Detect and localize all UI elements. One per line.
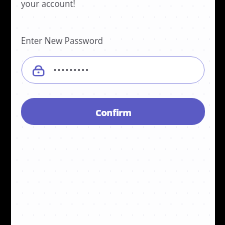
staticText: Enter New Password (21, 35, 103, 47)
button[interactable]: Password (21, 56, 205, 84)
staticText: Confirm (95, 106, 132, 118)
staticText: your account! (21, 0, 76, 10)
button[interactable]: Confirm (21, 98, 205, 125)
other: Password (32, 64, 45, 77)
